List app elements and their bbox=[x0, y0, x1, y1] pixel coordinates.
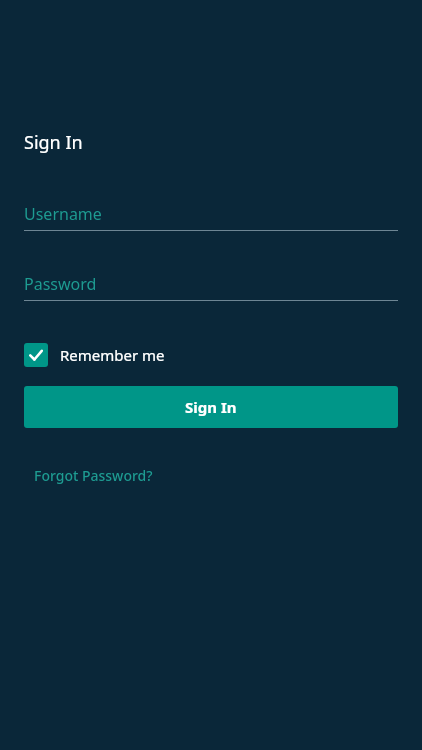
staticText: Forgot Password? bbox=[34, 466, 153, 485]
staticText: Password bbox=[24, 273, 97, 295]
staticText: Username bbox=[24, 203, 102, 225]
button[interactable]: Password bbox=[24, 273, 398, 301]
button[interactable]: Sign In bbox=[24, 386, 398, 428]
button[interactable]: Forgot Password? bbox=[34, 462, 153, 489]
staticText: Sign In bbox=[185, 397, 237, 417]
button[interactable]: Username bbox=[24, 203, 398, 231]
other: Remember me checkbox bbox=[24, 343, 48, 367]
button[interactable]: Remember me checkbox bbox=[24, 341, 165, 369]
staticText: Remember me bbox=[60, 345, 165, 365]
staticText: Sign In bbox=[24, 130, 83, 155]
